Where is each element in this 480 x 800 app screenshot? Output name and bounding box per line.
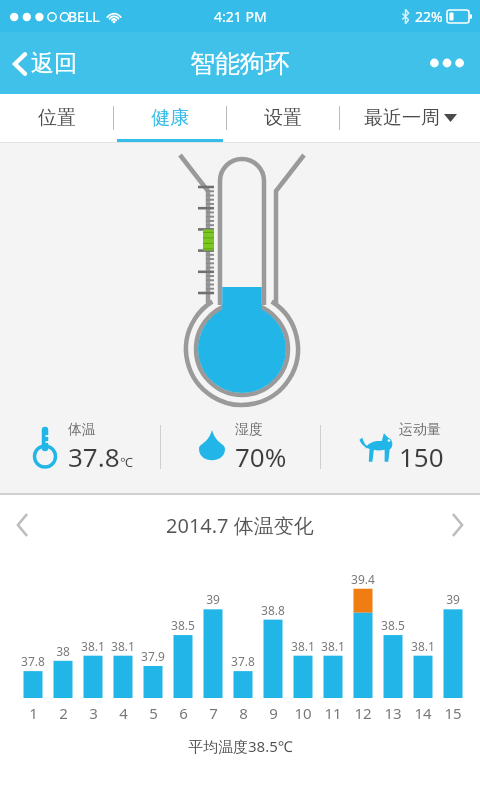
staticText: 1 xyxy=(29,703,38,723)
staticText: 6 xyxy=(179,703,188,723)
staticText: 8 xyxy=(239,703,248,723)
staticText: 70% xyxy=(235,439,287,474)
staticText: 37.8 xyxy=(68,439,120,474)
staticText: 11 xyxy=(324,703,342,723)
staticText: 2014.7 体温变化 xyxy=(166,512,314,539)
staticText: 9 xyxy=(269,703,278,723)
button[interactable]: 位置 xyxy=(0,94,113,142)
staticText: 38.1 xyxy=(291,638,315,654)
staticText: 运动量 xyxy=(399,421,441,439)
staticText: 39 xyxy=(206,591,220,607)
staticText: 湿度 xyxy=(235,421,263,439)
button[interactable]: 最近一周 xyxy=(340,94,480,142)
staticText: 设置 xyxy=(264,106,302,130)
staticText: 38.5 xyxy=(171,617,195,633)
staticText: 智能狗环 xyxy=(190,48,290,79)
staticText: 39 xyxy=(446,591,460,607)
staticText: 37.9 xyxy=(141,648,165,664)
staticText: 平均温度38.5℃ xyxy=(188,736,293,756)
staticText: 37.8 xyxy=(21,653,45,669)
button[interactable]: 健康 xyxy=(114,94,226,142)
staticText: 14 xyxy=(414,703,432,723)
button[interactable]: Previous xyxy=(0,502,45,548)
staticText: 38.1 xyxy=(411,638,435,654)
staticText: 2 xyxy=(59,703,68,723)
staticText: 39.4 xyxy=(351,571,375,587)
staticText: BELL xyxy=(68,7,100,26)
staticText: 返回 xyxy=(31,49,77,78)
staticText: 7 xyxy=(209,703,218,723)
staticText: 150 xyxy=(399,439,444,474)
staticText: ℃ xyxy=(120,453,133,471)
staticText: 位置 xyxy=(38,106,76,130)
staticText: 体温 xyxy=(68,421,96,439)
button[interactable]: Next xyxy=(435,502,480,548)
staticText: 38.1 xyxy=(81,638,105,654)
staticText: 12 xyxy=(354,703,372,723)
staticText: 38.8 xyxy=(261,602,285,618)
staticText: 38 xyxy=(56,643,70,659)
staticText: 13 xyxy=(384,703,402,723)
staticText: 4:21 PM xyxy=(214,7,267,26)
staticText: 38.1 xyxy=(321,638,345,654)
staticText: 4 xyxy=(119,703,128,723)
staticText: 22% xyxy=(415,7,443,26)
staticText: 38.5 xyxy=(381,617,405,633)
staticText: 37.8 xyxy=(231,653,255,669)
staticText: 10 xyxy=(294,703,312,723)
staticText: 3 xyxy=(89,703,98,723)
button[interactable]: 设置 xyxy=(227,94,339,142)
button[interactable]: More options xyxy=(414,44,480,82)
staticText: 健康 xyxy=(151,106,189,130)
button[interactable]: 湿度 xyxy=(161,401,320,493)
staticText: 最近一周 xyxy=(364,106,440,130)
staticText: 15 xyxy=(444,703,462,723)
button[interactable]: 体温 xyxy=(0,401,160,493)
button[interactable]: 返回 xyxy=(0,41,89,86)
staticText: 5 xyxy=(149,703,158,723)
button[interactable]: 运动量 xyxy=(321,401,480,493)
staticText: 38.1 xyxy=(111,638,135,654)
